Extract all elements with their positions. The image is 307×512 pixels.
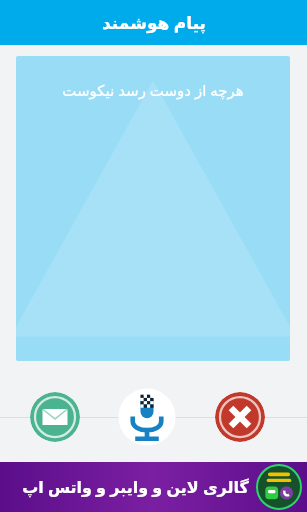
button[interactable]: هرچه از دوست رسد نیکوست <box>16 56 290 361</box>
button[interactable]: Send message <box>30 392 80 442</box>
staticText: پیام هوشمند <box>102 11 206 34</box>
button[interactable]: پیام هوشمند <box>0 0 307 45</box>
button[interactable]: Cancel <box>215 392 265 442</box>
staticText: گالری لاین و وایبر و واتس اپ <box>22 476 249 498</box>
button[interactable]: گالری لاین و وایبر و واتس اپ <box>0 462 307 512</box>
staticText: هرچه از دوست رسد نیکوست <box>62 80 244 100</box>
button[interactable]: Record voice <box>116 386 178 448</box>
